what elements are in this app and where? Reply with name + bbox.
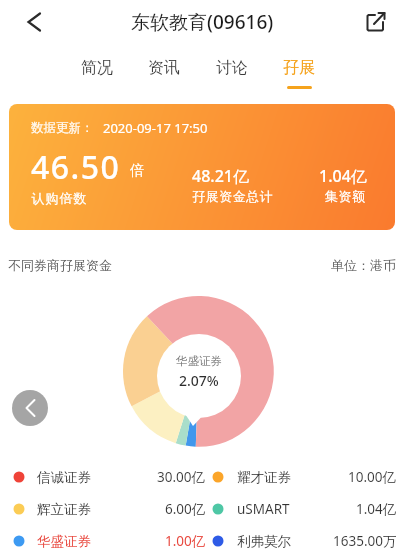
- staticText: 2020-09-17 17:50: [103, 119, 208, 137]
- staticText: 倍: [130, 162, 144, 180]
- staticText: 2.07%: [179, 371, 219, 390]
- staticText: 孖展资金总计: [192, 188, 273, 204]
- staticText: 单位：港币: [331, 257, 396, 273]
- staticText: 1.00亿: [165, 532, 206, 550]
- button[interactable]: 讨论: [202, 46, 262, 90]
- staticText: 46.50: [31, 145, 121, 189]
- button[interactable]: [17, 4, 53, 40]
- button[interactable]: 辉立证券: [8, 495, 206, 523]
- staticText: 认购倍数: [31, 190, 87, 206]
- staticText: 辉立证券: [37, 501, 91, 518]
- staticText: 48.21亿: [192, 165, 249, 187]
- button[interactable]: 简况: [67, 46, 127, 90]
- button[interactable]: [358, 4, 394, 40]
- staticText: 孖展: [283, 58, 315, 78]
- staticText: 华盛证券: [176, 354, 222, 368]
- staticText: 讨论: [216, 58, 248, 78]
- button[interactable]: [12, 390, 48, 426]
- staticText: 6.00亿: [165, 500, 206, 518]
- staticText: 耀才证券: [237, 469, 291, 486]
- staticText: 华盛证券: [37, 533, 91, 550]
- button[interactable]: uSMART: [207, 495, 397, 523]
- staticText: 集资额: [325, 188, 366, 204]
- staticText: 30.00亿: [157, 468, 206, 486]
- staticText: 利弗莫尔: [237, 533, 291, 550]
- staticText: uSMART: [237, 500, 290, 518]
- staticText: 资讯: [148, 58, 180, 78]
- staticText: 1.04亿: [356, 500, 397, 518]
- button[interactable]: 耀才证券: [207, 463, 397, 491]
- staticText: 1635.00万: [333, 532, 397, 550]
- staticText: 不同券商孖展资金: [8, 257, 112, 273]
- button[interactable]: 信诚证券: [8, 463, 206, 491]
- staticText: 东软教育(09616): [131, 9, 274, 35]
- button[interactable]: 资讯: [134, 46, 194, 90]
- staticText: 信诚证券: [37, 469, 91, 486]
- staticText: 10.00亿: [348, 468, 397, 486]
- staticText: 简况: [81, 58, 113, 78]
- button[interactable]: 孖展: [269, 46, 329, 90]
- button[interactable]: 华盛证券: [8, 527, 206, 555]
- staticText: 1.04亿: [319, 165, 367, 187]
- button[interactable]: 数据更新：: [9, 104, 395, 230]
- button[interactable]: 利弗莫尔: [207, 527, 397, 555]
- staticText: 数据更新：: [31, 120, 94, 136]
